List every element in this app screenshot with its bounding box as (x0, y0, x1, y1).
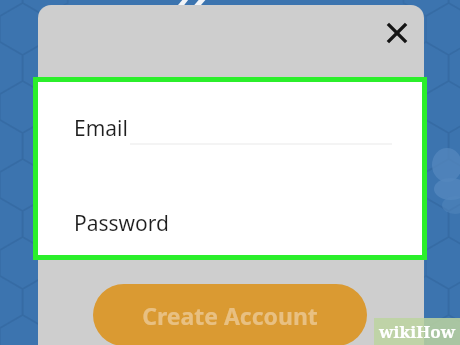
button[interactable]: Create Account (93, 284, 367, 345)
button[interactable]: Email (38, 82, 422, 255)
staticText: wikiHow (379, 320, 456, 343)
staticText: Create Account (142, 300, 318, 331)
button[interactable]: Close (380, 16, 414, 50)
staticText: Password (74, 209, 169, 238)
staticText: Email (74, 114, 128, 143)
